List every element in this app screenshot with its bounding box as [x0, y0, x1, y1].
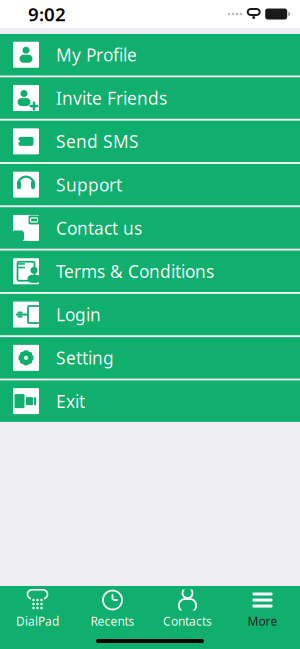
staticText: Exit [56, 390, 85, 413]
staticText: Contact us [56, 216, 142, 239]
button[interactable]: Contacts [150, 589, 225, 629]
staticText: Contacts [163, 613, 212, 629]
staticText: Send SMS [56, 130, 139, 153]
button[interactable]: Contact us [0, 207, 300, 249]
button[interactable]: Send SMS [0, 121, 300, 162]
button[interactable]: DialPad [0, 589, 75, 629]
button[interactable]: More [225, 589, 300, 629]
button[interactable]: Invite Friends [0, 77, 300, 119]
staticText: Support [56, 173, 122, 196]
button[interactable]: Setting [0, 337, 300, 379]
button[interactable]: Recents [75, 589, 150, 629]
staticText: Invite Friends [56, 86, 167, 109]
staticText: Recents [90, 613, 134, 629]
button[interactable]: Login [0, 294, 300, 335]
staticText: My Profile [56, 43, 137, 66]
staticText: Setting [56, 346, 114, 369]
staticText: More [247, 613, 277, 629]
staticText: 9:02 [28, 2, 66, 26]
button[interactable]: Terms & Conditions [0, 250, 300, 292]
staticText: Login [56, 303, 101, 326]
button[interactable]: Exit [0, 380, 300, 422]
button[interactable]: My Profile [0, 34, 300, 75]
staticText: Terms & Conditions [56, 260, 214, 283]
staticText: DialPad [16, 613, 59, 629]
button[interactable]: Support [0, 164, 300, 205]
